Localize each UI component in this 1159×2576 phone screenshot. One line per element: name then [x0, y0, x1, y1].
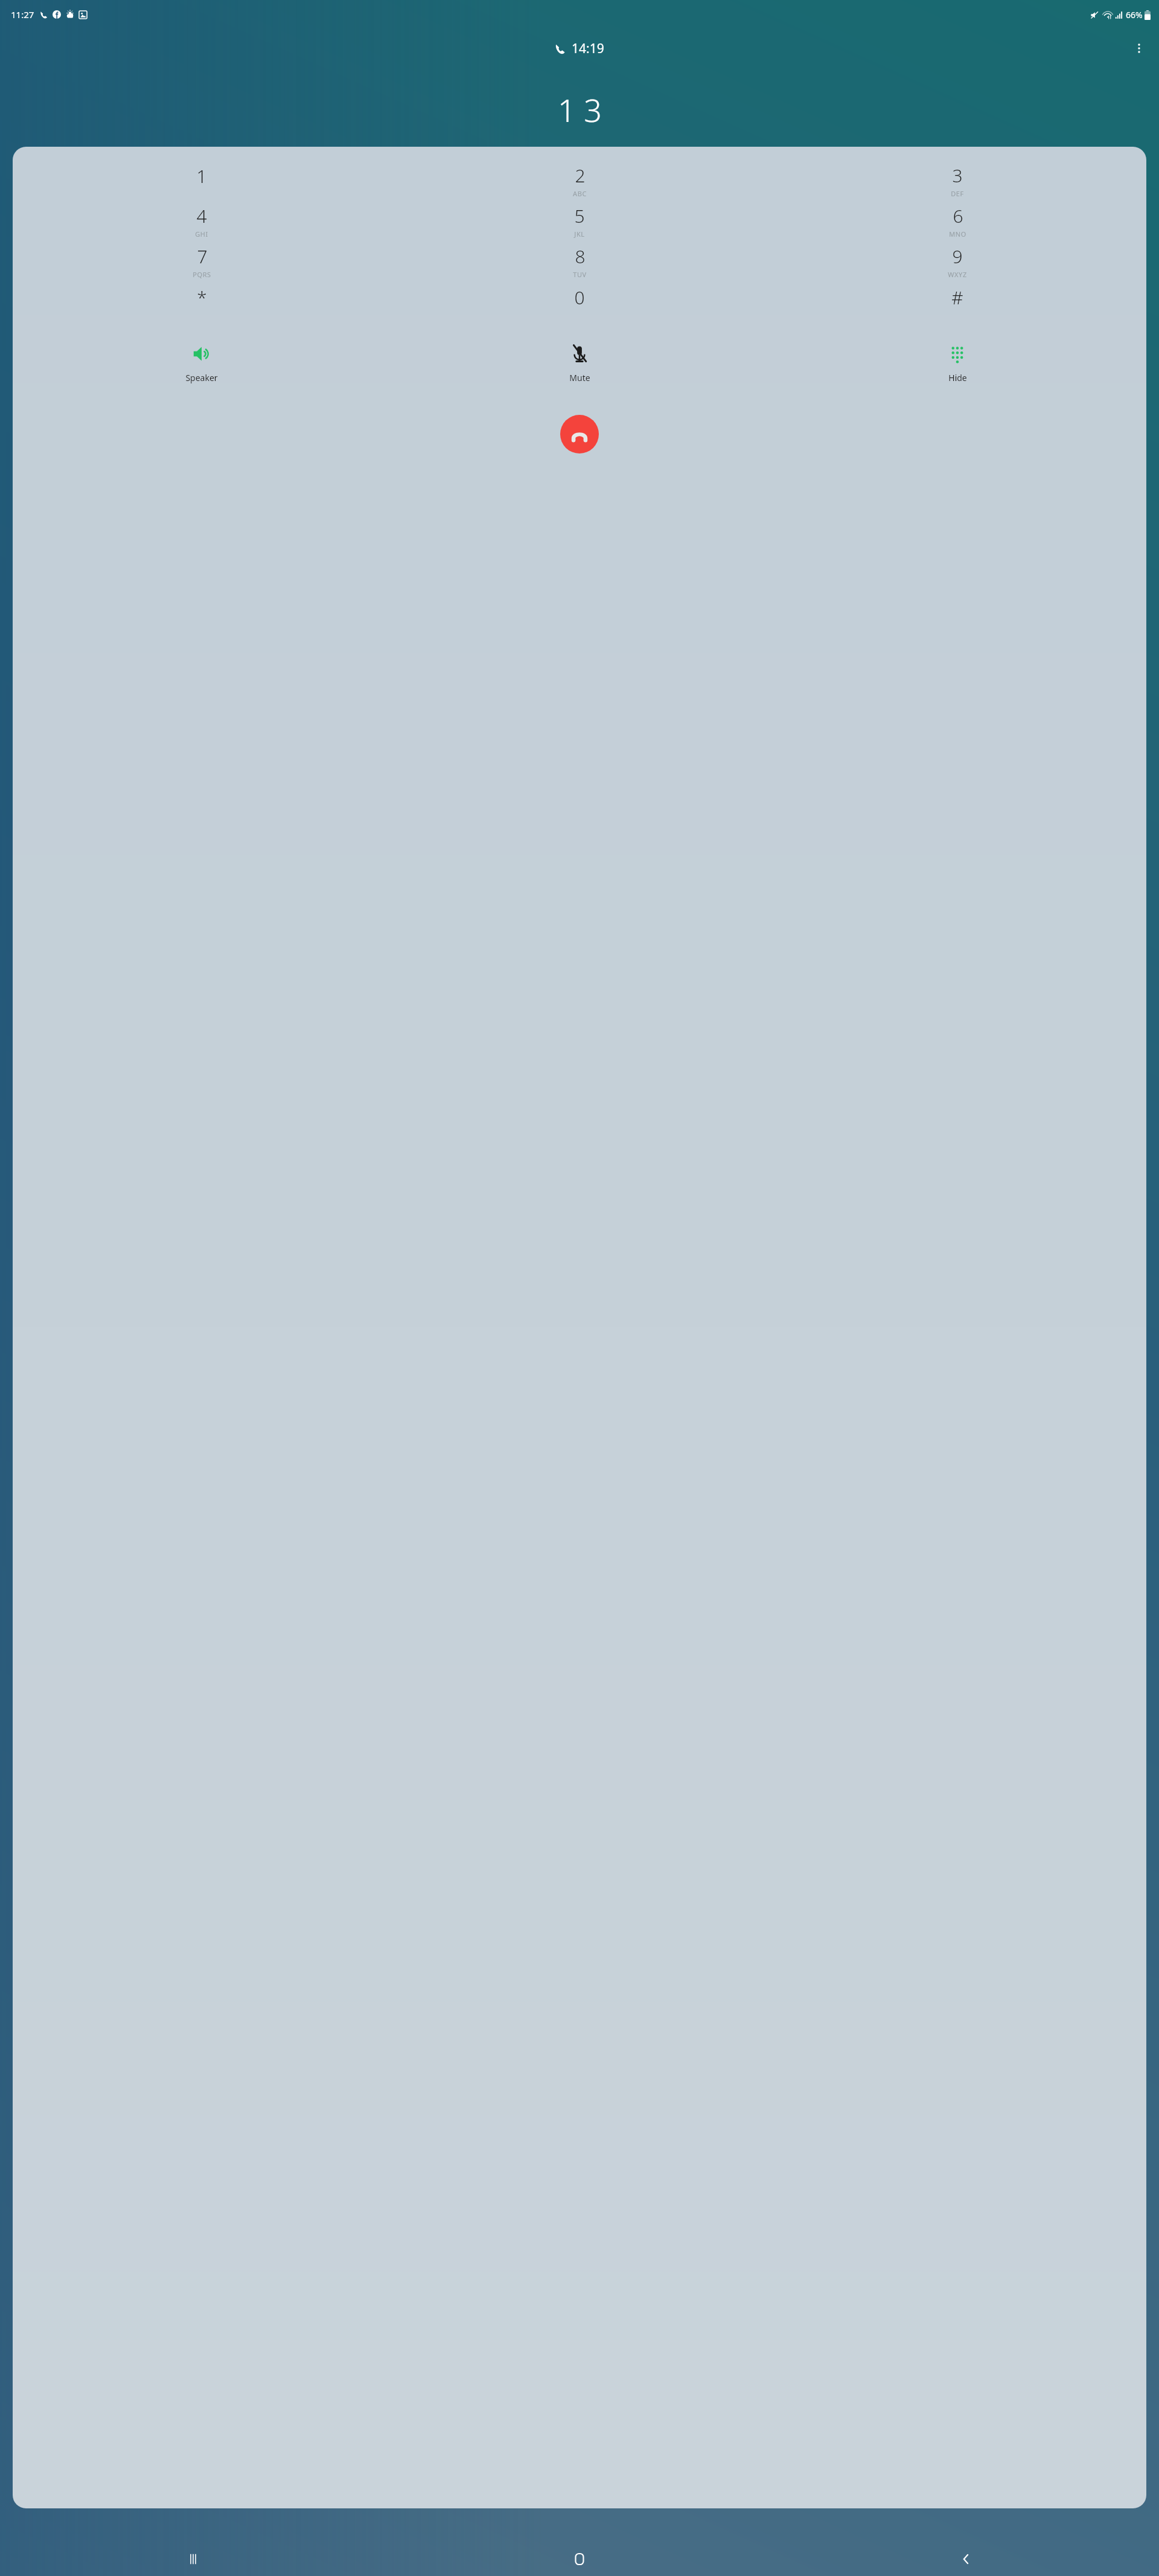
button[interactable]: 1 — [13, 160, 391, 200]
button[interactable]: Recents — [0, 2542, 386, 2576]
button[interactable]: 0 — [391, 281, 768, 322]
staticText: # — [951, 285, 963, 310]
button[interactable]: Back — [773, 2542, 1159, 2576]
staticText: JKL — [574, 229, 585, 239]
button[interactable]: 3 — [768, 160, 1146, 200]
staticText: 14:19 — [572, 40, 604, 57]
staticText: WXYZ — [948, 270, 967, 279]
button[interactable]: Speaker — [13, 345, 391, 393]
staticText: 1 3 — [558, 88, 602, 131]
staticText: * — [197, 285, 207, 310]
button[interactable]: More options — [1125, 34, 1153, 62]
button[interactable]: 7 — [13, 241, 391, 281]
staticText: 66% — [1126, 9, 1143, 21]
staticText: 5 — [574, 203, 585, 228]
staticText: DEF — [951, 189, 964, 198]
button[interactable]: 9 — [768, 241, 1146, 281]
button[interactable]: * — [13, 281, 391, 322]
button[interactable]: Hide — [768, 345, 1146, 393]
staticText: 7 — [197, 244, 208, 269]
button[interactable]: # — [768, 281, 1146, 322]
staticText: PQRS — [193, 270, 211, 279]
staticText: 11:27 — [11, 8, 34, 21]
staticText: ABC — [573, 189, 587, 198]
button[interactable]: Home — [386, 2542, 773, 2576]
staticText: GHI — [195, 229, 208, 239]
staticText: 6 — [953, 203, 963, 228]
staticText: 2 — [575, 163, 586, 188]
staticText: MNO — [949, 229, 966, 239]
button[interactable]: 8 — [391, 241, 768, 281]
button[interactable]: 4 — [13, 200, 391, 241]
staticText: Hide — [948, 372, 967, 383]
staticText: 0 — [574, 285, 585, 310]
button[interactable]: 6 — [768, 200, 1146, 241]
staticText: 9 — [952, 244, 963, 269]
staticText: 8 — [575, 244, 586, 269]
button[interactable]: Mute — [391, 345, 768, 393]
staticText: 3 — [952, 163, 963, 188]
staticText: TUV — [573, 270, 587, 279]
staticText: Speaker — [185, 372, 218, 383]
staticText: Mute — [569, 372, 590, 383]
staticText: 4 — [196, 203, 207, 228]
button[interactable]: 5 — [391, 200, 768, 241]
staticText: 1 — [196, 164, 207, 188]
button[interactable]: 2 — [391, 160, 768, 200]
button[interactable]: End call — [560, 415, 599, 453]
